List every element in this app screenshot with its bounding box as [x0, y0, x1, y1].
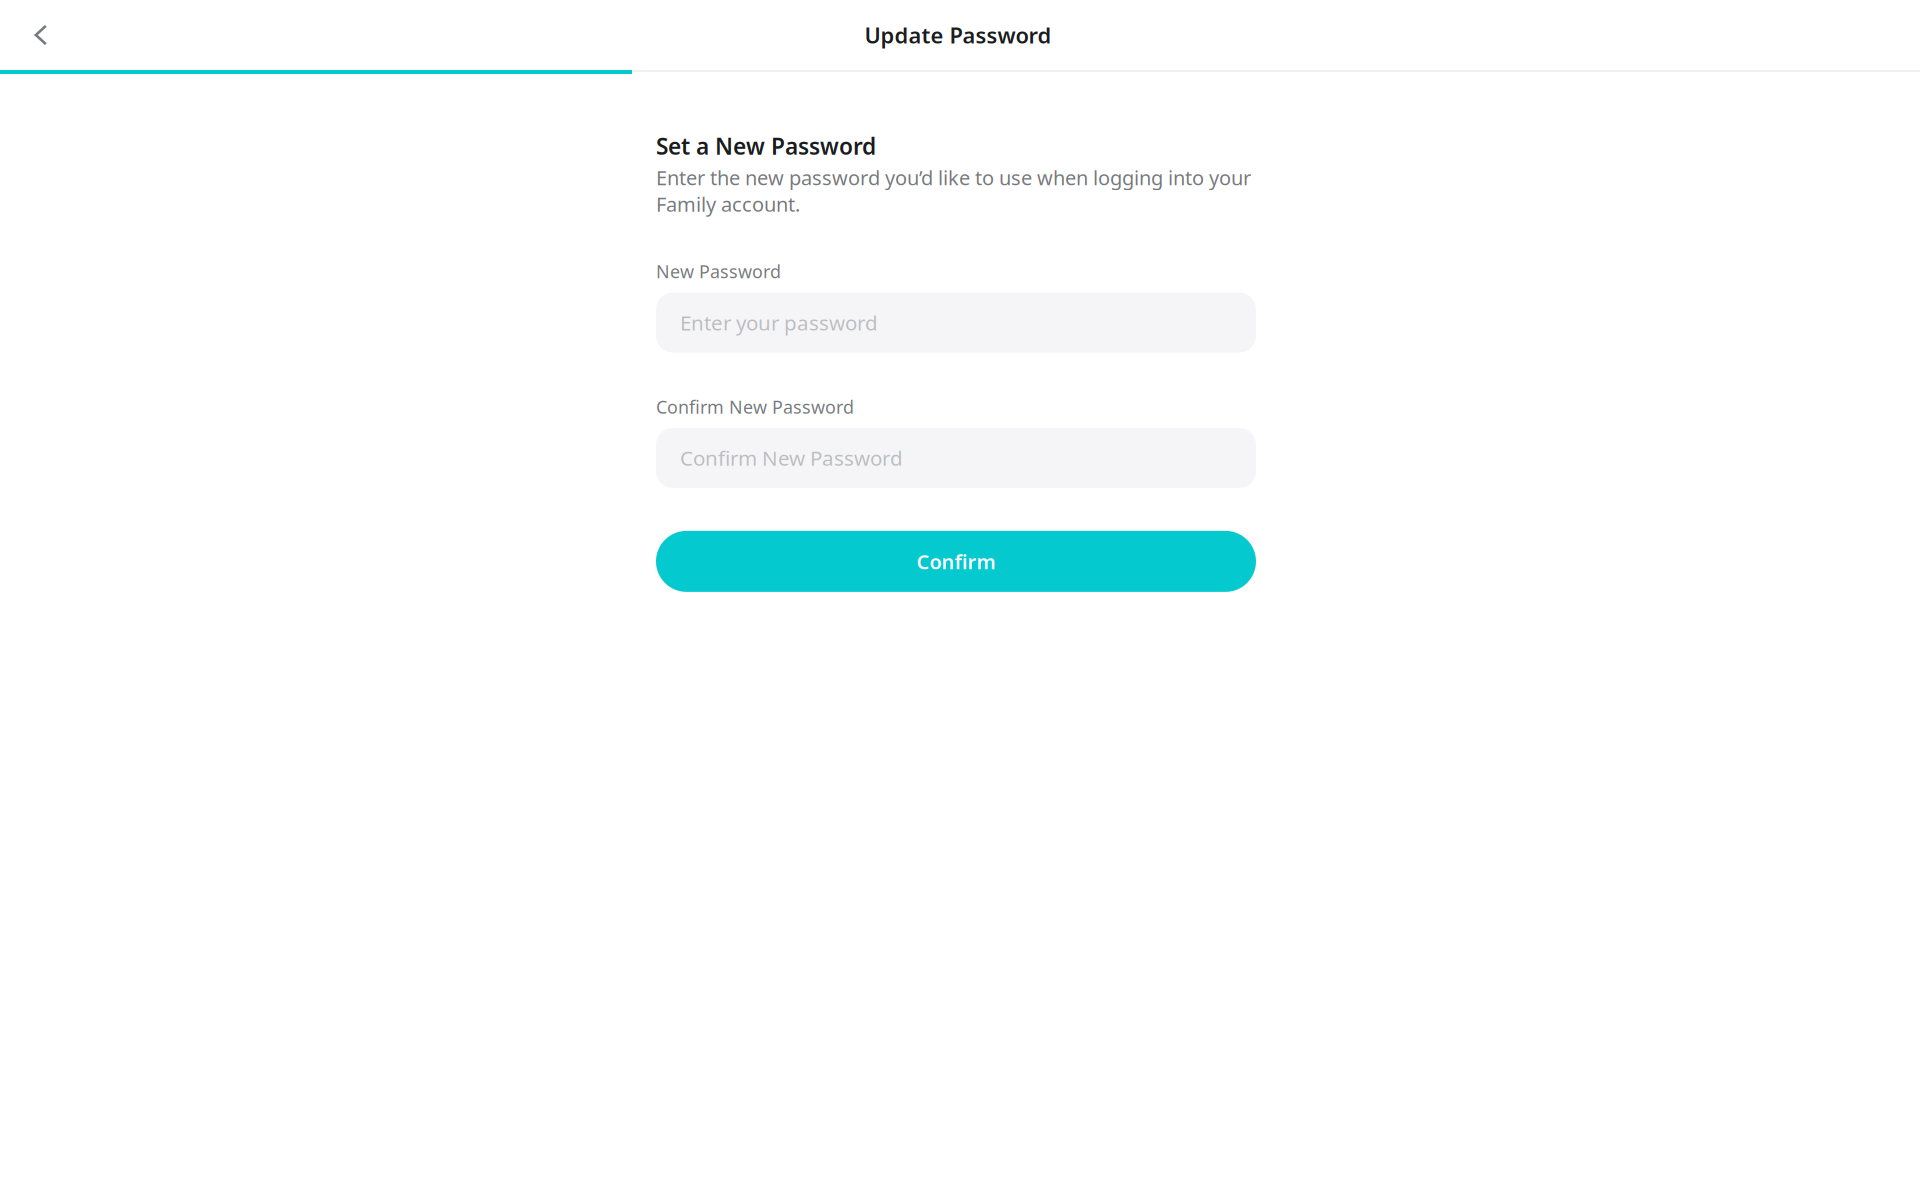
staticText: Update Password [864, 20, 1051, 50]
button[interactable]: Back [0, 0, 82, 71]
staticText: Enter your password [680, 309, 878, 337]
staticText: Enter the new password you’d like to use… [656, 164, 1251, 217]
button[interactable]: Confirm [656, 531, 1256, 592]
staticText: Confirm New Password [680, 444, 903, 472]
staticText: New Password [656, 259, 781, 283]
staticText: Set a New Password [656, 131, 876, 161]
button[interactable]: Confirm New Password [656, 428, 1256, 488]
button[interactable]: Enter your password [656, 293, 1256, 353]
staticText: Confirm New Password [656, 395, 854, 419]
staticText: Confirm [916, 548, 995, 575]
